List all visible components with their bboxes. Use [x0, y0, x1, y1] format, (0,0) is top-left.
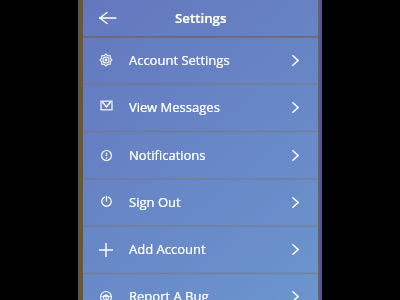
staticText: Settings — [175, 9, 227, 27]
button[interactable]: Account Settings — [83, 37, 318, 84]
button[interactable]: Report A Bug — [83, 273, 318, 300]
button[interactable]: Sign Out — [83, 179, 318, 226]
staticText: View Messages — [129, 98, 220, 116]
button[interactable]: Notifications — [83, 132, 318, 179]
staticText: Report A Bug — [129, 287, 209, 300]
staticText: Sign Out — [129, 193, 181, 211]
staticText: Add Account — [129, 240, 206, 258]
staticText: Account Settings — [129, 51, 230, 69]
button[interactable]: View Messages — [83, 84, 318, 131]
staticText: Notifications — [129, 146, 206, 164]
button[interactable]: Add Account — [83, 226, 318, 273]
button[interactable]: Back — [94, 5, 120, 33]
